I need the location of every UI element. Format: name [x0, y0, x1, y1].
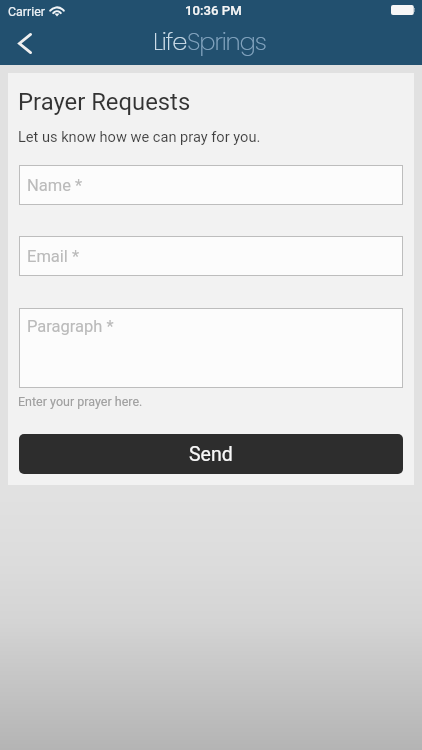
- staticText: Carrier: [8, 4, 45, 19]
- button[interactable]: Name *: [19, 165, 403, 205]
- staticText: Life: [153, 24, 187, 58]
- staticText: Enter your prayer here.: [18, 394, 143, 409]
- button[interactable]: Send: [19, 434, 403, 474]
- button[interactable]: Paragraph *: [19, 308, 403, 388]
- staticText: Springs: [187, 24, 266, 58]
- button[interactable]: Back: [2, 21, 48, 65]
- staticText: Paragraph *: [27, 317, 114, 336]
- staticText: 10:36 PM: [185, 3, 242, 18]
- staticText: Prayer Requests: [18, 88, 191, 116]
- staticText: Send: [189, 443, 233, 466]
- staticText: Let us know how we can pray for you.: [18, 128, 261, 145]
- button[interactable]: Email *: [19, 236, 403, 276]
- staticText: Email *: [27, 247, 80, 266]
- staticText: Name *: [27, 176, 83, 195]
